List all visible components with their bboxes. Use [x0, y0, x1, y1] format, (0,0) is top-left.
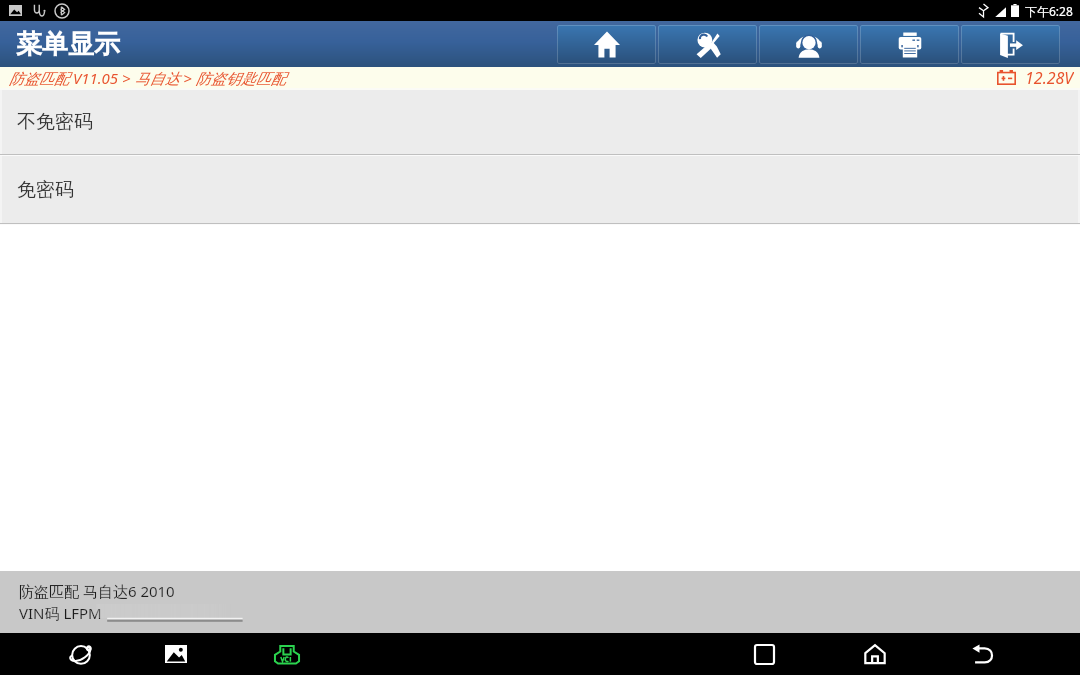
staticText: 12.28V — [1025, 67, 1074, 88]
button[interactable]: Print — [860, 25, 959, 64]
button[interactable]: Exit — [961, 25, 1060, 64]
staticText: 不免密码 — [17, 110, 93, 134]
staticText: 菜单显示 — [16, 28, 120, 61]
staticText: 防盗匹配 V11.05 > 马自达 > 防盗钥匙匹配 — [9, 68, 286, 88]
button[interactable]: Support — [759, 25, 858, 64]
staticText: 免密码 — [17, 178, 74, 202]
staticText: 防盗匹配 马自达6 2010 — [19, 581, 175, 601]
button[interactable]: Home — [853, 633, 897, 675]
button[interactable]: Back — [961, 633, 1005, 675]
button[interactable]: Recents — [742, 633, 786, 675]
staticText: VIN码 LFPM — [19, 603, 102, 623]
button[interactable]: Diagnostics tools — [658, 25, 757, 64]
button[interactable]: Home — [557, 25, 656, 64]
button[interactable]: 免密码 — [0, 156, 1080, 223]
staticText: 下午6:28 — [1025, 3, 1073, 19]
button[interactable]: Browser — [59, 633, 103, 675]
button[interactable]: Gallery — [154, 633, 198, 675]
button[interactable]: VCI device — [265, 633, 309, 675]
button[interactable]: 不免密码 — [0, 90, 1080, 154]
